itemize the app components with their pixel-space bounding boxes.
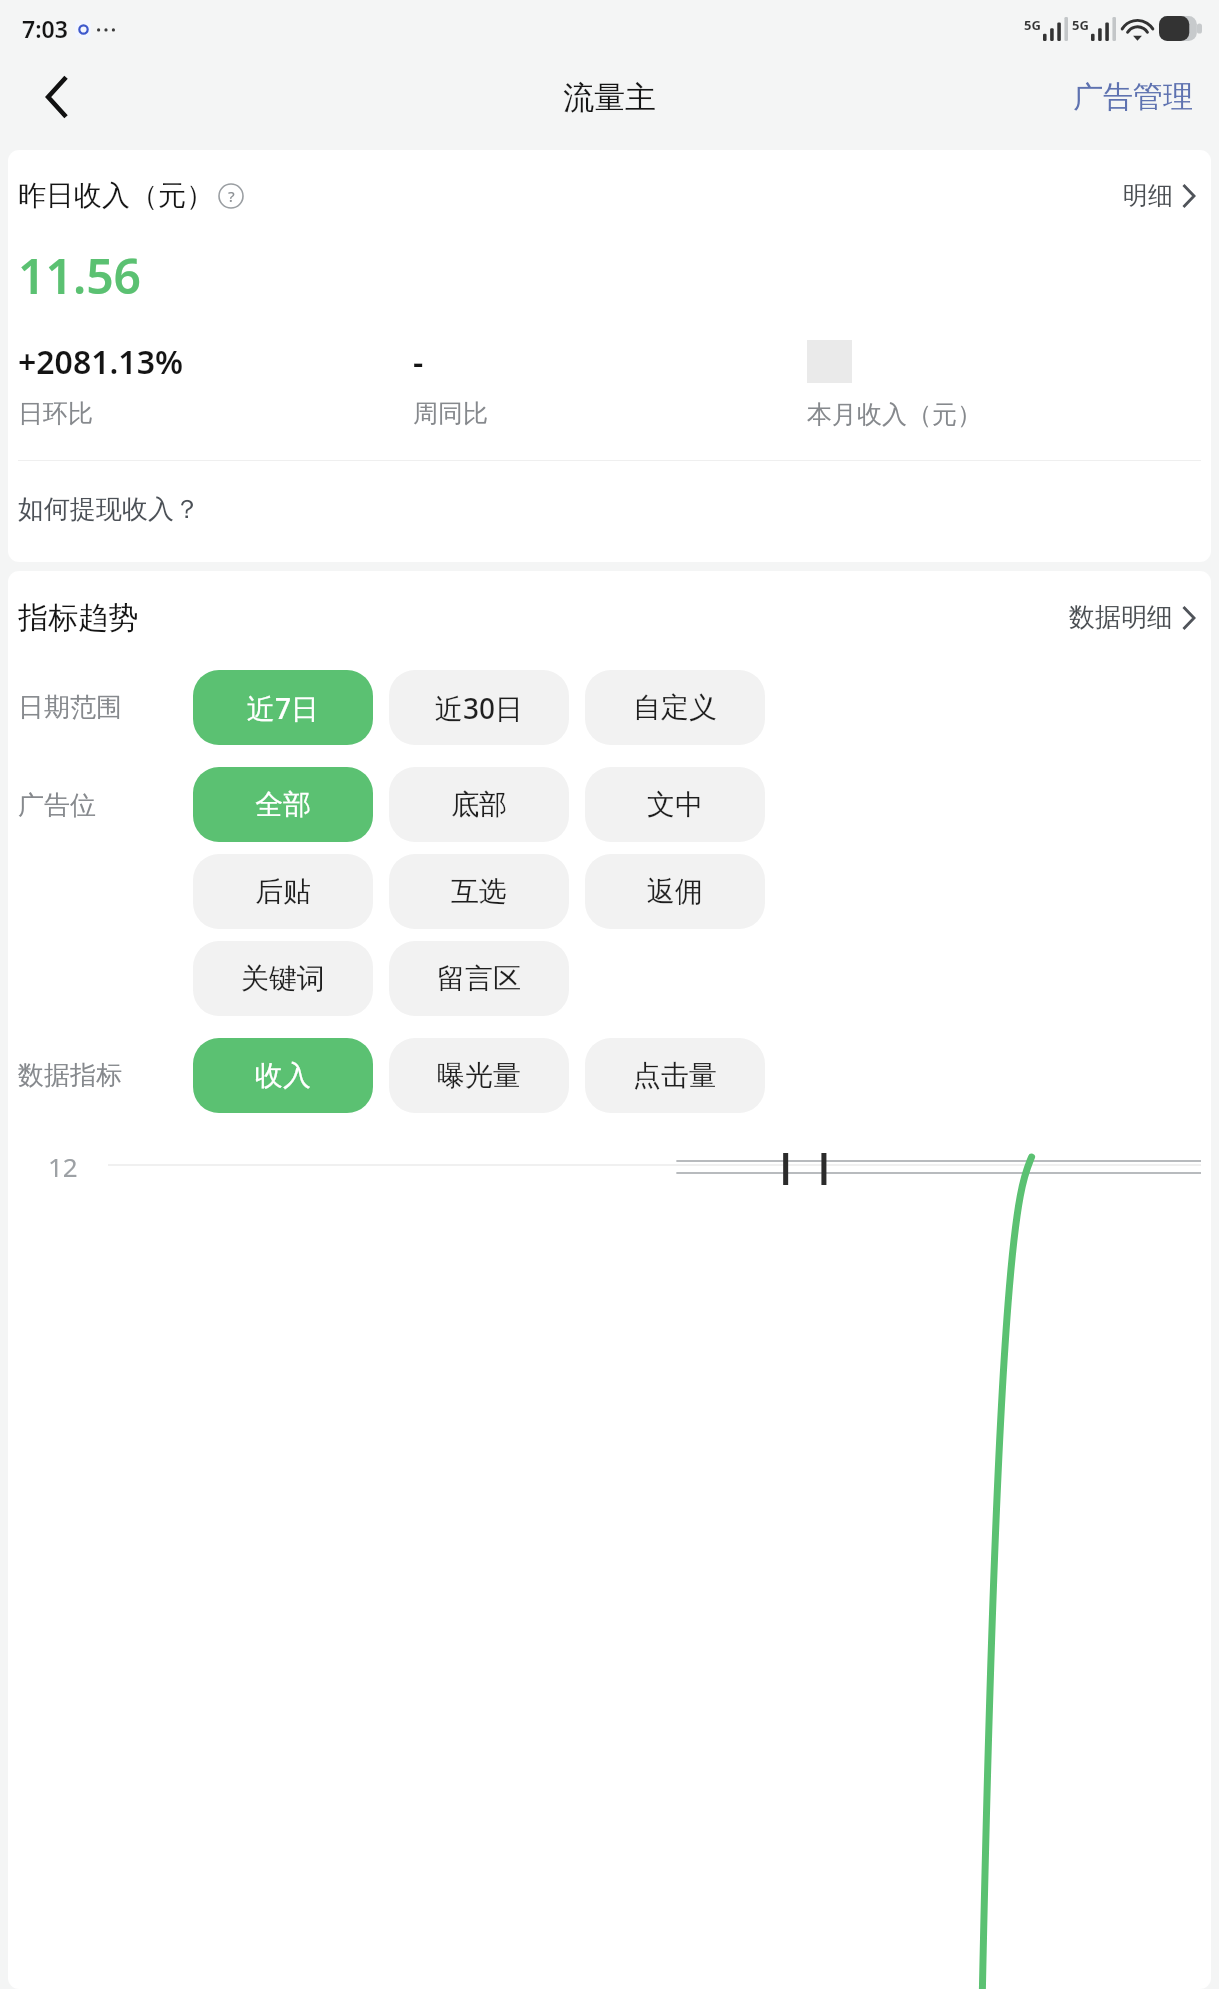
button[interactable]: 底部 <box>389 767 569 842</box>
button[interactable]: 广告管理 <box>1065 68 1201 126</box>
staticText: 点击量 <box>633 1058 717 1093</box>
staticText: 5G <box>1072 16 1089 34</box>
button[interactable]: 留言区 <box>389 941 569 1016</box>
button[interactable]: 返佣 <box>585 854 765 929</box>
staticText: 12 <box>48 1149 78 1184</box>
button[interactable]: 后贴 <box>193 854 373 929</box>
button[interactable]: 全部 <box>193 767 373 842</box>
staticText: 返佣 <box>647 874 703 909</box>
button[interactable]: 收入 <box>193 1038 373 1113</box>
staticText: 底部 <box>451 787 507 822</box>
button[interactable]: Help <box>218 183 244 209</box>
staticText: 留言区 <box>437 961 521 996</box>
staticText: 近30日 <box>435 689 524 727</box>
staticText: 日期范围 <box>18 691 122 724</box>
button[interactable]: 文中 <box>585 767 765 842</box>
button[interactable]: 互选 <box>389 854 569 929</box>
staticText: 全部 <box>255 787 311 822</box>
staticText: 数据明细 <box>1069 601 1173 634</box>
staticText: 周同比 <box>413 398 488 429</box>
button[interactable]: 关键词 <box>193 941 373 1016</box>
button[interactable]: 曝光量 <box>389 1038 569 1113</box>
button[interactable]: 自定义 <box>585 670 765 745</box>
staticText: 5G <box>1024 16 1041 34</box>
button[interactable]: 明细 <box>1117 174 1201 217</box>
staticText: 互选 <box>451 874 507 909</box>
button[interactable]: 如何提现收入？ <box>18 489 200 530</box>
button[interactable]: 近30日 <box>389 670 569 745</box>
button[interactable]: 近7日 <box>193 670 373 745</box>
staticText: 流量主 <box>563 78 656 117</box>
staticText: 数据指标 <box>18 1059 122 1092</box>
staticText: 收入 <box>255 1058 311 1093</box>
button[interactable]: Back <box>26 67 86 127</box>
staticText: 明细 <box>1123 180 1173 211</box>
staticText: 如何提现收入？ <box>18 493 200 526</box>
staticText: 昨日收入（元） <box>18 178 214 213</box>
staticText: 11.56 <box>18 243 142 308</box>
staticText: - <box>413 340 424 384</box>
staticText: 广告管理 <box>1073 78 1193 116</box>
staticText: 后贴 <box>255 874 311 909</box>
staticText: ? <box>228 186 235 206</box>
staticText: 日环比 <box>18 398 93 429</box>
staticText: 指标趋势 <box>18 599 138 637</box>
staticText: 文中 <box>647 787 703 822</box>
staticText: 自定义 <box>633 690 717 725</box>
staticText: 近7日 <box>247 689 320 727</box>
staticText: +2081.13% <box>18 340 183 384</box>
button[interactable]: 数据明细 <box>1063 595 1201 640</box>
button[interactable]: 点击量 <box>585 1038 765 1113</box>
staticText: 广告位 <box>18 789 96 822</box>
staticText: 本月收入（元） <box>807 399 982 430</box>
staticText: 7:03 <box>22 13 68 44</box>
staticText: 曝光量 <box>437 1058 521 1093</box>
staticText: 关键词 <box>241 961 325 996</box>
